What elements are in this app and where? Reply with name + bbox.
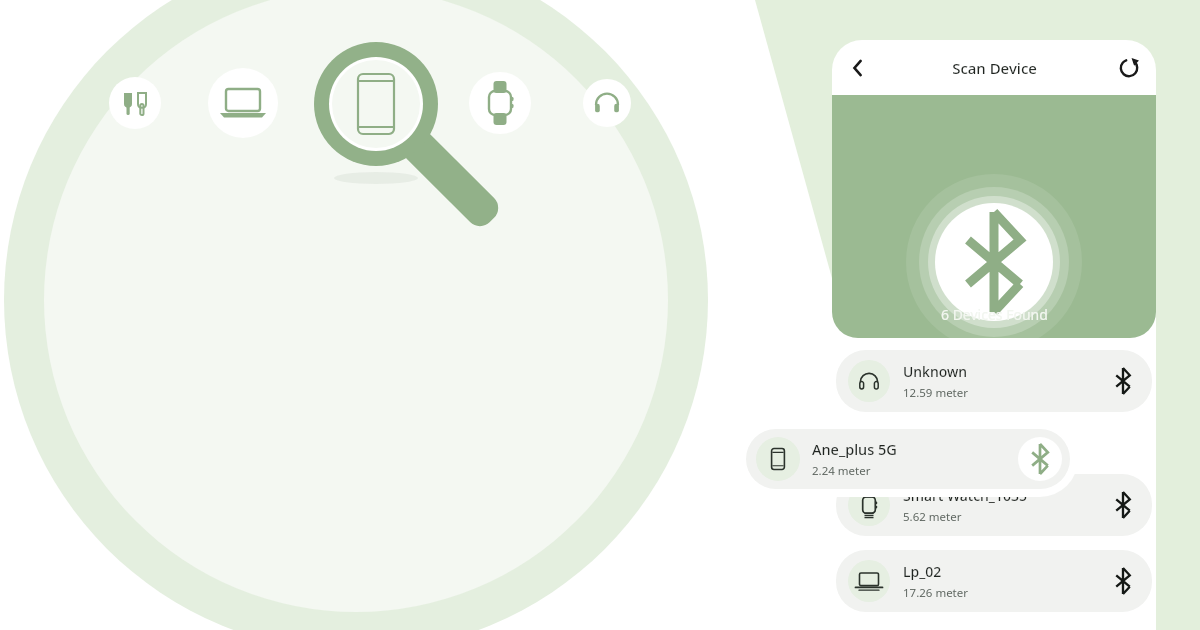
button[interactable]: Connected: [1018, 437, 1062, 481]
staticText: 12.59 meter: [903, 385, 969, 401]
button[interactable]: Connect: [1106, 488, 1140, 522]
staticText: 17.26 meter: [903, 585, 969, 601]
staticText: Smart Watch_1035: [903, 486, 1027, 505]
staticText: 6 Devices Found: [941, 305, 1048, 324]
button[interactable]: Ane_plus 5G: [738, 421, 1078, 497]
button[interactable]: Back: [838, 48, 878, 88]
staticText: 2.24 meter: [812, 463, 871, 479]
staticText: Unknown: [903, 362, 968, 381]
button[interactable]: Smart Watch_1035: [836, 474, 1152, 536]
button[interactable]: Unknown: [836, 350, 1152, 412]
staticText: Ane_plus 5G: [812, 439, 897, 459]
button[interactable]: Refresh: [1110, 49, 1148, 87]
button[interactable]: Connect: [1106, 364, 1140, 398]
button[interactable]: Connect: [1106, 564, 1140, 598]
button[interactable]: Lp_02: [836, 550, 1152, 612]
staticText: 5.62 meter: [903, 509, 962, 525]
staticText: Lp_02: [903, 562, 942, 581]
staticText: Scan Device: [952, 58, 1037, 78]
